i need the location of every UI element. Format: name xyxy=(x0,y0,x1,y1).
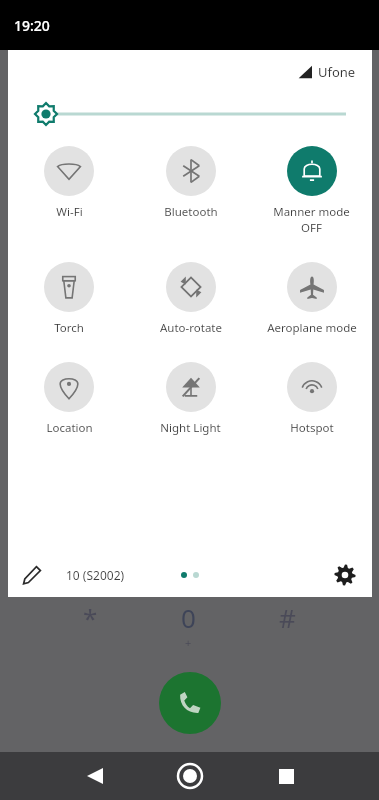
button[interactable]: Auto-rotate xyxy=(130,260,251,338)
staticText: Torch xyxy=(54,320,84,336)
staticText: Hotspot xyxy=(290,420,334,436)
staticText: Ufone xyxy=(318,63,356,81)
staticText: + xyxy=(185,635,192,650)
button[interactable]: Back xyxy=(80,761,110,791)
button[interactable]: Bluetooth xyxy=(130,144,251,222)
staticText: 19:20 xyxy=(14,16,50,35)
button[interactable]: Aeroplane mode xyxy=(251,260,372,338)
button[interactable]: Night Light xyxy=(130,360,251,438)
button[interactable]: Manner mode xyxy=(251,144,372,238)
staticText: Location xyxy=(46,420,93,436)
staticText: Wi-Fi xyxy=(56,204,83,220)
button[interactable]: Call xyxy=(159,672,221,734)
staticText: OFF xyxy=(301,220,322,236)
button[interactable]: Settings xyxy=(332,562,358,588)
button[interactable]: Location xyxy=(8,360,130,438)
button[interactable]: Wi-Fi xyxy=(8,144,130,222)
button[interactable]: Home xyxy=(173,759,207,793)
staticText: Bluetooth xyxy=(164,204,218,220)
staticText: 0 xyxy=(181,600,196,635)
button[interactable]: Edit xyxy=(22,565,42,585)
button[interactable]: Brightness xyxy=(8,94,372,134)
staticText: Manner mode xyxy=(273,204,350,220)
button[interactable]: Hotspot xyxy=(251,360,372,438)
staticText: Auto-rotate xyxy=(160,320,222,336)
staticText: Night Light xyxy=(160,420,221,436)
staticText: # xyxy=(279,600,296,635)
staticText: * xyxy=(83,600,98,635)
button[interactable]: Recents xyxy=(271,761,301,791)
staticText: Aeroplane mode xyxy=(267,320,357,336)
button[interactable]: Torch xyxy=(8,260,130,338)
staticText: 10 (S2002) xyxy=(66,567,125,583)
